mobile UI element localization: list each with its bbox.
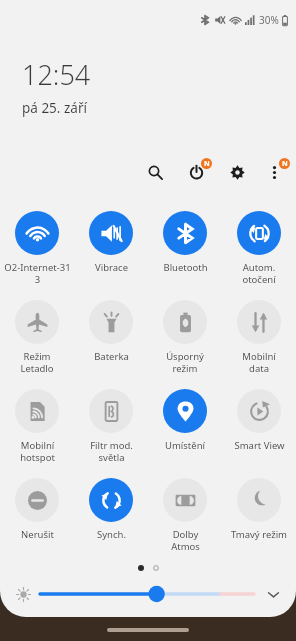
staticText: pá 25. září: [22, 99, 87, 117]
button[interactable]: Dolby Atmos: [148, 472, 222, 561]
staticText: Úsporný režim: [166, 350, 204, 375]
button[interactable]: Mobilní hotspot: [0, 383, 74, 472]
button[interactable]: Expand quick settings: [261, 582, 285, 606]
button[interactable]: O2-Internet-31 3: [0, 205, 74, 294]
staticText: N: [204, 159, 210, 169]
button[interactable]: Baterka: [74, 294, 148, 383]
button[interactable]: Mobilní data: [222, 294, 296, 383]
button[interactable]: Vibrace: [74, 205, 148, 294]
button[interactable]: Brightness slider: [40, 584, 254, 604]
button[interactable]: Smart View: [222, 383, 296, 472]
button[interactable]: Settings: [222, 157, 252, 187]
button[interactable]: Autom. otočení: [222, 205, 296, 294]
staticText: Tmavý režim: [231, 528, 287, 541]
button[interactable]: Režim Letadlo: [0, 294, 74, 383]
button[interactable]: Brightness settings: [11, 582, 35, 606]
staticText: 30%: [259, 13, 279, 27]
button[interactable]: Nerušit: [0, 472, 74, 561]
button[interactable]: Úsporný režim: [148, 294, 222, 383]
staticText: Mobilní data: [242, 350, 276, 375]
staticText: Nerušit: [21, 528, 54, 541]
button[interactable]: Bluetooth: [148, 205, 222, 294]
button[interactable]: Search: [140, 157, 170, 187]
button[interactable]: Filtr mod. světla: [74, 383, 148, 472]
staticText: Bluetooth: [163, 261, 208, 274]
staticText: Režim Letadlo: [20, 350, 54, 375]
staticText: Baterka: [94, 350, 129, 363]
staticText: O2-Internet-31 3: [4, 261, 71, 286]
button[interactable]: Power off: [181, 157, 211, 187]
button[interactable]: Umístění: [148, 383, 222, 472]
staticText: Dolby Atmos: [171, 528, 200, 553]
button[interactable]: More options: [259, 157, 289, 187]
button[interactable]: Synch.: [74, 472, 148, 561]
staticText: Smart View: [234, 439, 285, 452]
staticText: 12:54: [22, 56, 91, 93]
staticText: Mobilní hotspot: [20, 439, 55, 464]
staticText: Filtr mod. světla: [90, 439, 133, 464]
staticText: Autom. otočení: [242, 261, 276, 286]
staticText: N: [282, 159, 288, 169]
staticText: Vibrace: [95, 261, 128, 274]
staticText: Umístění: [165, 439, 205, 452]
button[interactable]: Tmavý režim: [222, 472, 296, 561]
staticText: Synch.: [97, 528, 126, 541]
